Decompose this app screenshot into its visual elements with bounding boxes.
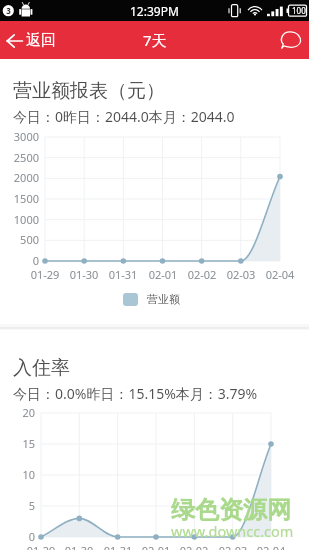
staticText: 02-02 (182, 267, 222, 282)
staticText: www.downcc.com (171, 521, 294, 541)
staticText: 12:39PM (130, 3, 179, 19)
staticText: 0 (0, 253, 39, 268)
staticText: 今日：0.0%昨日：15.15%本月：3.79% (13, 384, 258, 403)
staticText: 01-30 (59, 543, 99, 550)
button[interactable]: Messages (271, 25, 309, 55)
staticText: 02-03 (221, 267, 261, 282)
staticText: 1500 (0, 191, 39, 206)
staticText: 15 (0, 436, 35, 451)
staticText: 入住率 (13, 356, 70, 380)
staticText: 01-31 (98, 543, 138, 550)
staticText: 绿色资源网 (171, 495, 291, 525)
staticText: 2000 (0, 170, 39, 185)
staticText: 02-04 (260, 267, 300, 282)
staticText: 5 (0, 498, 35, 513)
staticText: 1000 (0, 212, 39, 227)
staticText: 01-29 (21, 543, 61, 550)
staticText: 3000 (0, 129, 39, 144)
staticText: 500 (0, 232, 39, 247)
staticText: 2500 (0, 150, 39, 165)
staticText: 02-03 (213, 543, 253, 550)
staticText: 返回 (26, 31, 56, 50)
staticText: 20 (0, 405, 35, 420)
staticText: 营业额 (147, 292, 180, 306)
staticText: 01-29 (25, 267, 65, 282)
staticText: 3 (6, 5, 11, 16)
staticText: 01-31 (103, 267, 143, 282)
staticText: 02-04 (251, 543, 291, 550)
button[interactable]: 返回 (0, 31, 66, 50)
staticText: 02-01 (143, 267, 183, 282)
staticText: 02-02 (174, 543, 214, 550)
staticText: 02-01 (136, 543, 176, 550)
staticText: 7天 (143, 30, 167, 50)
staticText: 营业额报表（元） (13, 79, 165, 103)
staticText: 今日：0昨日：2044.0本月：2044.0 (13, 107, 235, 126)
staticText: 100 (292, 5, 306, 16)
staticText: 01-30 (64, 267, 104, 282)
staticText: 0 (0, 529, 35, 544)
staticText: 10 (0, 467, 35, 482)
